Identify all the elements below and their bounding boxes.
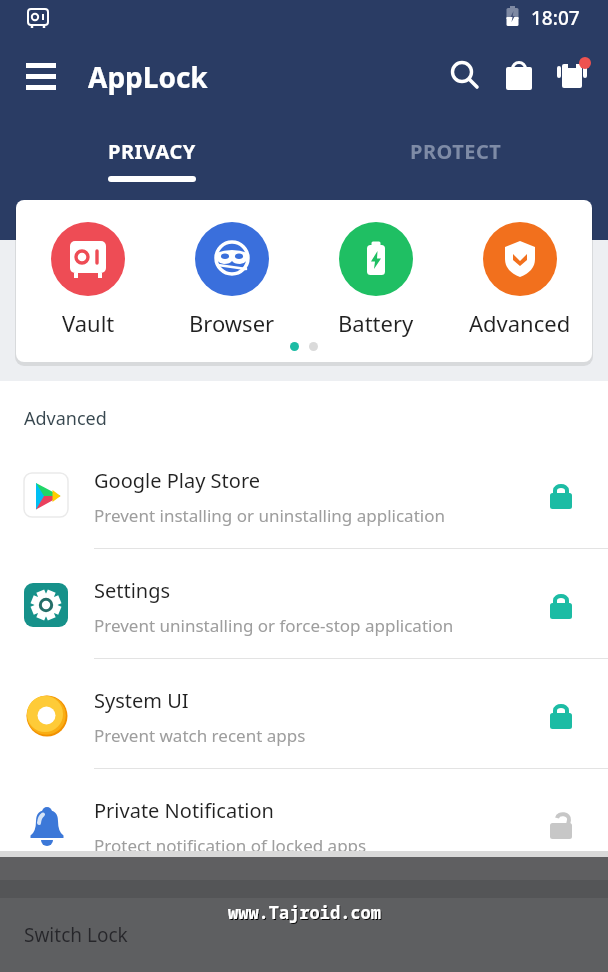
staticText: Browser: [189, 308, 275, 338]
button[interactable]: Battery: [304, 222, 448, 338]
staticText: System UI: [94, 687, 189, 714]
staticText: www.Tajroid.com: [228, 901, 381, 924]
staticText: Vault: [62, 308, 115, 338]
button[interactable]: [13, 48, 69, 104]
staticText: Google Play Store: [94, 467, 261, 494]
staticText: 18:07: [531, 5, 580, 31]
button[interactable]: System UI: [0, 659, 608, 769]
staticText: www.Tajroid.com: [229, 902, 382, 925]
button[interactable]: Vault: [16, 222, 160, 338]
staticText: AppLock: [88, 58, 208, 96]
staticText: Prevent installing or uninstalling appli…: [94, 504, 445, 527]
staticText: PRIVACY: [108, 138, 196, 165]
button[interactable]: [304, 118, 608, 185]
staticText: PROTECT: [410, 138, 502, 165]
staticText: Protect notification of locked apps: [94, 834, 367, 857]
button[interactable]: [438, 48, 492, 102]
staticText: Settings: [94, 577, 171, 604]
button[interactable]: Google Play Store: [0, 439, 608, 549]
button[interactable]: Settings: [0, 549, 608, 659]
staticText: Advanced: [24, 406, 107, 431]
button[interactable]: Advanced: [448, 222, 592, 338]
staticText: Private Notification: [94, 797, 274, 824]
staticText: Battery: [338, 308, 414, 338]
button[interactable]: [545, 48, 599, 102]
button[interactable]: [492, 48, 546, 102]
button[interactable]: Private Notification: [0, 769, 608, 879]
staticText: Prevent watch recent apps: [94, 724, 306, 747]
staticText: Advanced: [469, 308, 571, 338]
staticText: Switch Lock: [24, 922, 128, 948]
button[interactable]: [0, 118, 304, 185]
staticText: Prevent uninstalling or force-stop appli…: [94, 614, 454, 637]
button[interactable]: Browser: [160, 222, 304, 338]
